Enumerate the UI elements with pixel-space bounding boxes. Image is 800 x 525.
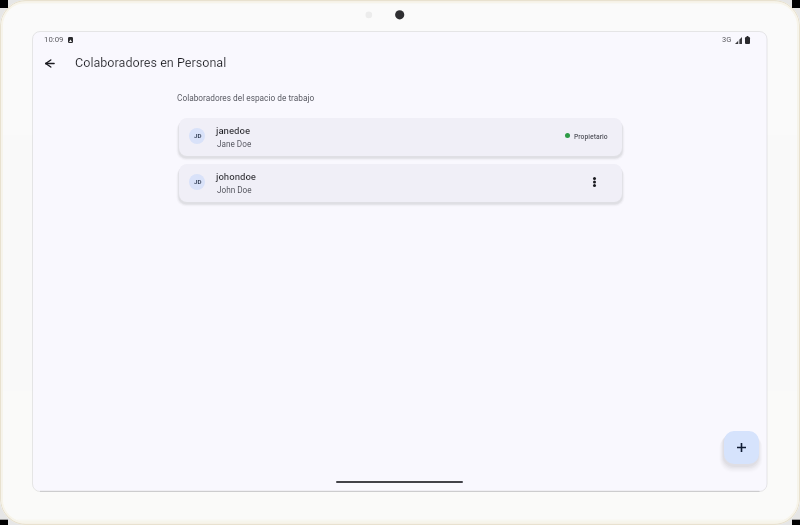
staticText: 3G xyxy=(722,35,732,44)
staticText: Colaboradores del espacio de trabajo xyxy=(177,93,315,103)
staticText: 10:09 xyxy=(44,35,64,44)
button[interactable]: JD xyxy=(179,118,622,156)
staticText: janedoe xyxy=(216,125,251,136)
staticText: JD xyxy=(194,178,202,185)
button[interactable]: More options xyxy=(584,172,604,192)
button[interactable]: Back xyxy=(36,49,64,77)
staticText: johondoe xyxy=(216,171,257,182)
staticText: Colaboradores en Personal xyxy=(75,55,227,70)
staticText: Propietario xyxy=(574,133,608,141)
staticText: John Doe xyxy=(217,185,252,195)
button[interactable]: Add xyxy=(724,431,759,464)
staticText: JD xyxy=(194,132,202,139)
button[interactable]: JD xyxy=(179,164,622,202)
staticText: Jane Doe xyxy=(217,139,252,149)
